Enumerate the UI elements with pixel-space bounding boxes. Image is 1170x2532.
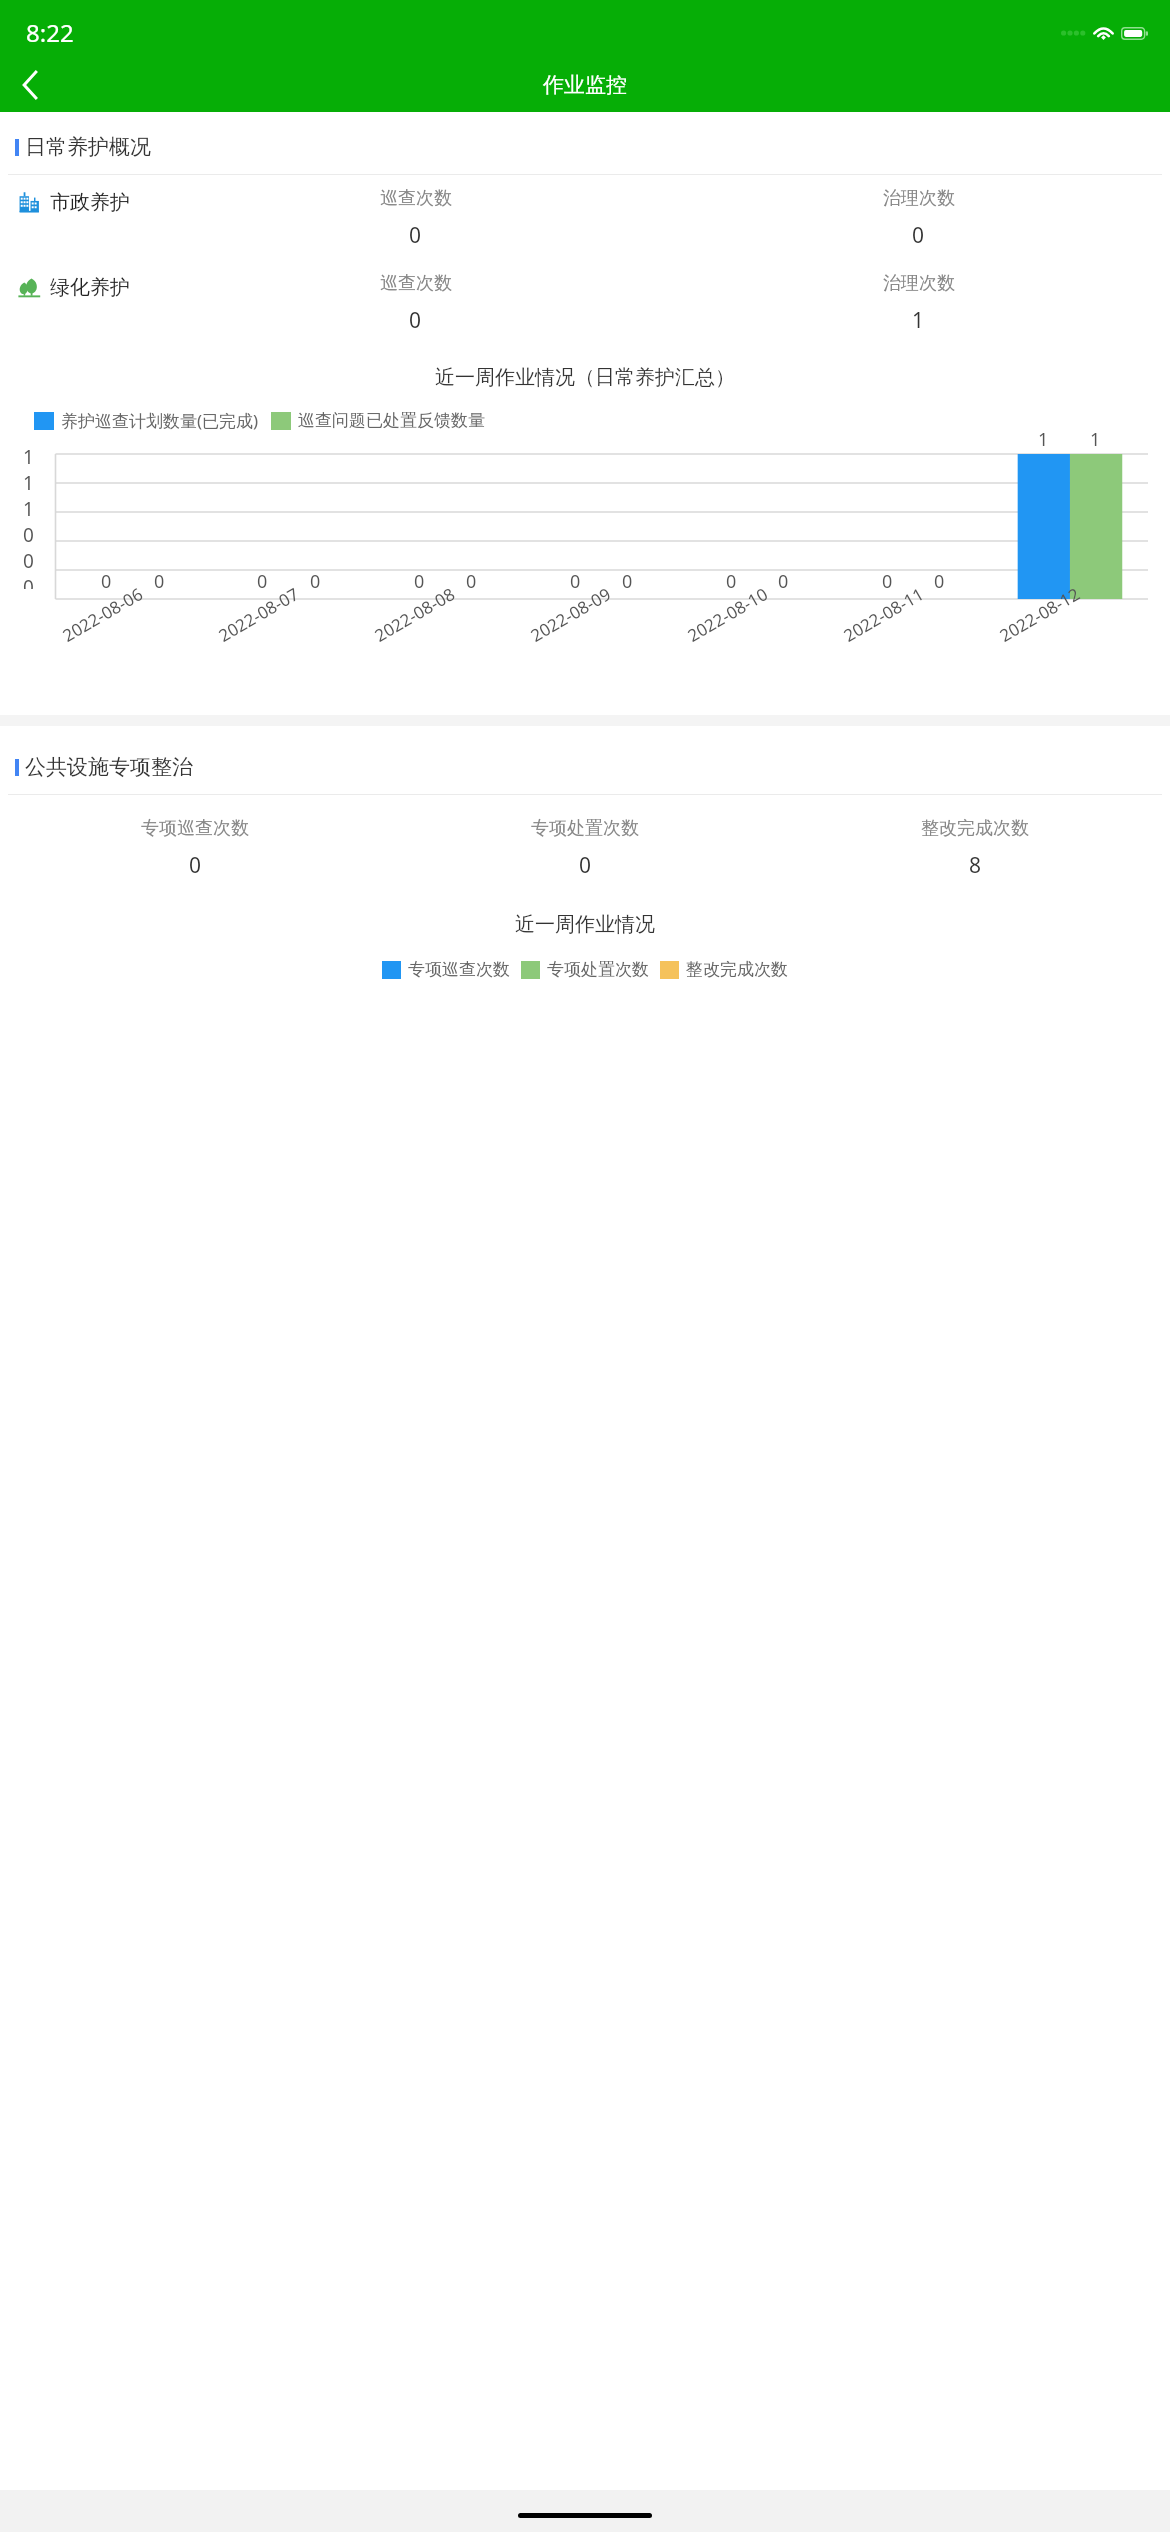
staticText: 2022-08-11 [839,582,928,647]
staticText: 专项巡查次数 [141,817,249,840]
staticText: 2022-08-07 [214,582,303,647]
staticText: 日常养护概况 [25,134,151,160]
staticText: 0 [570,569,581,594]
staticText: 1 [1090,427,1101,452]
staticText: 0 [778,569,789,594]
staticText: 0 [409,221,422,250]
staticText: 0 [622,569,633,594]
staticText: 0 [101,569,112,594]
staticText: 0 [257,569,268,594]
staticText: 0 [409,306,422,335]
staticText: 0 [23,548,34,574]
staticText: 1 [1038,427,1049,452]
staticText: 养护巡查计划数量(已完成) [61,409,259,432]
staticText: 1 [912,306,925,335]
button[interactable]: 市政养护 [0,187,1170,250]
staticText: 专项处置次数 [531,817,639,840]
button[interactable]: Back [6,61,54,109]
button[interactable]: 绿化养护 [0,272,1170,335]
staticText: 0 [882,569,893,594]
staticText: 巡查问题已处置反馈数量 [298,410,485,431]
staticText: 8:22 [26,16,74,49]
staticText: 巡查次数 [380,187,452,210]
button[interactable]: 日常养护概况 [0,134,1170,160]
button[interactable]: 公共设施专项整治 [0,754,1170,780]
staticText: 治理次数 [883,187,955,210]
staticText: 整改完成次数 [686,959,788,980]
staticText: 0 [466,569,477,594]
staticText: 1 [23,444,34,470]
staticText: 近一周作业情况 [0,912,1170,937]
staticText: 0 [23,522,34,548]
staticText: 0 [310,569,321,594]
staticText: 整改完成次数 [921,817,1029,840]
staticText: 绿化养护 [50,275,130,300]
staticText: 市政养护 [50,190,130,215]
staticText: 0 [579,851,592,880]
staticText: 2022-08-09 [526,582,615,647]
staticText: 0 [726,569,737,594]
staticText: 作业监控 [543,72,627,98]
staticText: 2022-08-12 [995,582,1084,647]
staticText: 0 [154,569,165,594]
staticText: 0 [414,569,425,594]
staticText: 0 [934,569,945,594]
staticText: 0 [912,221,925,250]
staticText: 公共设施专项整治 [25,754,193,780]
staticText: 治理次数 [883,272,955,295]
staticText: 专项巡查次数 [408,959,510,980]
staticText: 8 [969,851,982,880]
staticText: 0 [23,574,34,589]
staticText: 2022-08-06 [58,582,147,647]
staticText: 0 [189,851,202,880]
staticText: 1 [23,496,34,522]
staticText: 巡查次数 [380,272,452,295]
staticText: 近一周作业情况（日常养护汇总） [0,365,1170,390]
staticText: 专项处置次数 [547,959,649,980]
staticText: 2022-08-08 [370,582,459,647]
staticText: 2022-08-10 [683,582,772,647]
staticText: 1 [23,470,34,496]
